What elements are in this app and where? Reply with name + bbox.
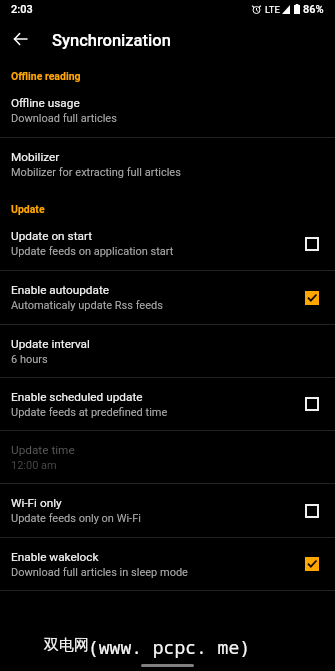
staticText: 86% [303, 3, 324, 16]
staticText: Synchronization [52, 31, 171, 50]
button[interactable]: Offline usage [0, 84, 335, 137]
staticText: Wi-Fi only [11, 496, 62, 510]
button[interactable]: Update time [0, 431, 335, 483]
button[interactable]: Wi-Fi only [0, 484, 335, 537]
staticText: 12:00 am [11, 459, 57, 472]
staticText: Update time [11, 443, 75, 457]
staticText: (www. pcpc. me) [88, 635, 250, 660]
staticText: Mobilizer [11, 150, 60, 164]
staticText: Download full articles in sleep mode [11, 566, 188, 579]
staticText: Enable wakelock [11, 550, 99, 564]
button[interactable]: Enable wakelock [0, 538, 335, 590]
staticText: 双电网 [44, 636, 89, 655]
staticText: Automaticaly update Rss feeds [11, 299, 163, 312]
button[interactable]: Update on start [0, 217, 335, 270]
staticText: Update interval [11, 337, 90, 351]
button[interactable]: Enable scheduled update [0, 378, 335, 430]
staticText: Update on start [11, 229, 93, 243]
staticText: Enable scheduled update [11, 390, 143, 404]
staticText: Offline usage [11, 96, 80, 110]
button[interactable]: Enable autoupdate [0, 271, 335, 324]
staticText: Offline reading [11, 70, 81, 82]
staticText: 2:03 [11, 3, 33, 16]
staticText: Enable autoupdate [11, 283, 110, 297]
staticText: Update feeds on application start [11, 245, 174, 258]
staticText: Download full articles [11, 112, 117, 125]
staticText: LTE [265, 4, 280, 15]
button[interactable]: Back [0, 18, 41, 60]
button[interactable]: Mobilizer [0, 138, 335, 191]
staticText: Mobilizer for extracting full articles [11, 166, 181, 179]
staticText: 6 hours [11, 353, 48, 366]
staticText: Update feeds only on Wi-Fi [11, 512, 141, 525]
staticText: Update [11, 203, 45, 215]
button[interactable]: Update interval [0, 325, 335, 377]
staticText: Update feeds at predefined time [11, 406, 168, 419]
